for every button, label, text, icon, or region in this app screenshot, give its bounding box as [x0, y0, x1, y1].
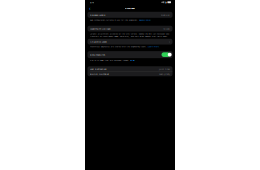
staticText: 2481 (c19f) [159, 72, 170, 76]
button[interactable]: Analytics Level [87, 39, 172, 44]
staticText: Release Mode [90, 13, 105, 16]
staticText: 9:41 [90, 1, 94, 4]
staticText: ‹ [89, 4, 91, 12]
staticText: 10 MB [163, 27, 170, 30]
staticText: Learn more [148, 45, 159, 48]
staticText: Last Refreshed [90, 67, 107, 70]
staticText: Opt in to builds that are still under re… [90, 59, 130, 61]
staticText: Largest attachment accepted by the sync … [90, 32, 170, 38]
staticText: Debug [161, 13, 170, 16]
button[interactable]: Build Number [87, 71, 172, 76]
staticText: Just now [159, 67, 170, 70]
button[interactable]: Learn more [148, 45, 159, 48]
staticText: › [169, 39, 170, 44]
staticText: Beta Features [90, 53, 105, 56]
button[interactable]: Release notes [139, 19, 151, 21]
button[interactable]: Beta Features [87, 51, 172, 58]
staticText: Developer [125, 7, 135, 10]
staticText: Build Number [90, 72, 109, 76]
staticText: Build configuration currently in use for… [90, 19, 139, 21]
button[interactable]: Back [87, 5, 92, 11]
staticText: Anonymous diagnostics are shared with th… [90, 45, 148, 48]
button[interactable]: Release Mode [87, 12, 172, 18]
button[interactable]: Last Refreshed [87, 66, 172, 71]
button[interactable]: Maximum Upload [87, 26, 172, 31]
button[interactable]: Details [130, 59, 135, 61]
staticText: Release notes [139, 19, 151, 21]
staticText: Analytics Level [90, 40, 107, 43]
staticText: ◗ [165, 1, 166, 4]
staticText: Maximum Upload [90, 27, 111, 30]
staticText: Details [130, 59, 135, 61]
